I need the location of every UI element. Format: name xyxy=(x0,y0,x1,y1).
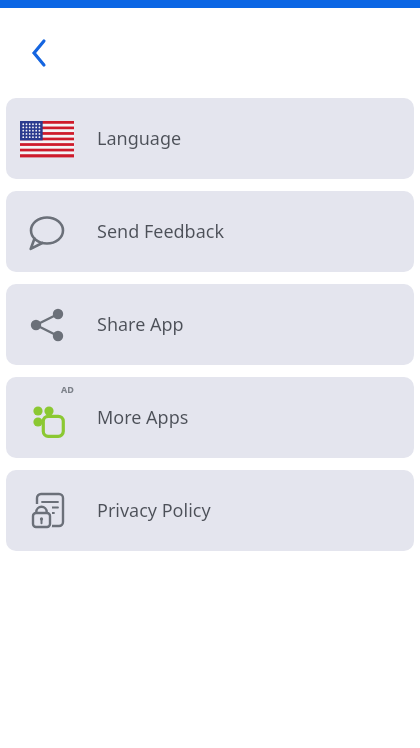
staticText: AD xyxy=(61,383,74,395)
button[interactable]: Share App xyxy=(6,284,414,365)
staticText: Language xyxy=(97,126,182,151)
staticText: Share App xyxy=(97,312,184,337)
button[interactable]: More Apps xyxy=(6,377,414,458)
button[interactable]: Back xyxy=(16,30,62,76)
button[interactable]: Language xyxy=(6,98,414,179)
staticText: Send Feedback xyxy=(97,219,225,244)
button[interactable]: Send Feedback xyxy=(6,191,414,272)
staticText: Privacy Policy xyxy=(97,498,211,523)
staticText: More Apps xyxy=(97,405,189,430)
button[interactable]: Privacy Policy xyxy=(6,470,414,551)
